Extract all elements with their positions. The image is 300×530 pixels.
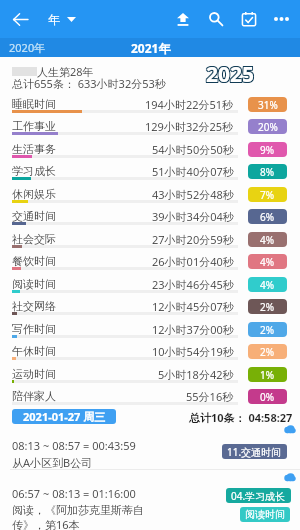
staticText: 2% xyxy=(260,323,275,337)
staticText: 54小时50分50秒 xyxy=(152,142,234,157)
staticText: 194小时22分51秒 xyxy=(145,97,234,112)
staticText: 阅读时间 xyxy=(245,508,285,521)
staticText: 2021-01-27 周三 xyxy=(23,409,106,424)
staticText: 04.学习成长 xyxy=(231,489,286,503)
staticText: 06:57 ~ 08:13 = 01:16:00 xyxy=(12,486,136,501)
button[interactable]: 工作事业 xyxy=(0,115,300,137)
button[interactable]: Sync to cloud xyxy=(284,473,295,482)
staticText: 51小时40分07秒 xyxy=(152,164,234,179)
button[interactable]: 社会交际 xyxy=(0,228,300,250)
staticText: 9% xyxy=(260,143,275,157)
button[interactable]: 阅读时间 xyxy=(0,273,300,295)
staticText: 129小时32分25秒 xyxy=(145,119,234,134)
button[interactable]: More options xyxy=(265,0,297,38)
staticText: 12小时37分00秒 xyxy=(152,322,234,337)
staticText: 2025 xyxy=(207,59,256,83)
button[interactable]: 休闲娱乐 xyxy=(0,183,300,205)
staticText: 总计655条： 633小时32分53秒 xyxy=(12,76,166,91)
staticText: 阅读时间 xyxy=(12,277,56,291)
staticText: 餐饮时间 xyxy=(12,254,56,268)
staticText: 2021年 xyxy=(131,40,171,56)
staticText: 生活事务 xyxy=(12,142,56,156)
button[interactable]: 7% xyxy=(248,187,287,202)
staticText: 0% xyxy=(260,390,275,404)
button[interactable]: 运动时间 xyxy=(0,363,300,385)
staticText: 10小时54分19秒 xyxy=(152,344,234,359)
staticText: 7% xyxy=(260,188,275,202)
button[interactable]: 2% xyxy=(248,344,287,359)
button[interactable]: 31% xyxy=(248,97,287,112)
button[interactable]: 1% xyxy=(248,367,287,382)
button[interactable]: 学习成长 xyxy=(0,160,300,182)
button[interactable]: 9% xyxy=(248,142,287,157)
staticText: 写作时间 xyxy=(12,322,56,336)
staticText: 社交网络 xyxy=(12,299,56,313)
button[interactable]: 生活事务 xyxy=(0,138,300,160)
button[interactable]: 阅读时间 xyxy=(240,507,290,522)
staticText: 2025 xyxy=(207,60,256,84)
button[interactable]: 4% xyxy=(248,277,287,292)
staticText: 27小时20分59秒 xyxy=(152,232,234,247)
staticText: 31% xyxy=(258,98,278,112)
staticText: 睡眠时间 xyxy=(12,97,56,111)
staticText: 人生第28年 xyxy=(37,64,94,79)
staticText: 2% xyxy=(260,300,275,314)
staticText: 社会交际 xyxy=(12,232,56,246)
staticText: 2025 xyxy=(206,59,255,83)
button[interactable]: Upload xyxy=(167,0,199,38)
staticText: 6% xyxy=(260,210,275,224)
staticText: 休闲娱乐 xyxy=(12,187,56,201)
staticText: 43小时52分48秒 xyxy=(152,187,234,202)
button[interactable]: Sync to cloud xyxy=(284,425,295,434)
staticText: 2025 xyxy=(205,61,254,85)
button[interactable]: 11.交通时间 xyxy=(222,444,287,459)
button[interactable]: 交通时间 xyxy=(0,205,300,227)
button[interactable]: 年 xyxy=(40,0,84,38)
staticText: 08:13 ~ 08:57 = 00:43:59 xyxy=(12,438,136,453)
staticText: 年 xyxy=(48,12,60,27)
staticText: 8% xyxy=(260,165,275,179)
button[interactable]: 04.学习成长 xyxy=(226,488,291,503)
staticText: 20% xyxy=(258,120,278,134)
button[interactable]: 2020年 xyxy=(0,38,89,57)
staticText: 交通时间 xyxy=(12,209,56,223)
staticText: 39小时34分04秒 xyxy=(152,209,234,224)
staticText: 2025 xyxy=(206,61,255,85)
staticText: 26小时01分40秒 xyxy=(152,254,234,269)
button[interactable]: 4% xyxy=(248,254,287,269)
staticText: 1% xyxy=(260,368,275,382)
button[interactable]: 4% xyxy=(248,232,287,247)
button[interactable]: 2% xyxy=(248,299,287,314)
staticText: 4% xyxy=(260,255,275,269)
button[interactable]: Calendar xyxy=(232,0,265,38)
button[interactable]: 20% xyxy=(248,119,287,134)
staticText: 11.交通时间 xyxy=(227,445,282,459)
button[interactable]: 午休时间 xyxy=(0,340,300,362)
button[interactable]: 0% xyxy=(248,389,287,404)
button[interactable]: 2021年 xyxy=(89,38,212,57)
staticText: 23小时46分45秒 xyxy=(152,277,234,292)
staticText: 陪伴家人 xyxy=(12,389,56,403)
button[interactable]: 6% xyxy=(248,209,287,224)
button[interactable]: 写作时间 xyxy=(0,318,300,340)
button[interactable]: Search xyxy=(199,0,232,38)
staticText: 55分16秒 xyxy=(186,389,234,404)
button[interactable]: 餐饮时间 xyxy=(0,250,300,272)
staticText: 12小时45分07秒 xyxy=(152,299,234,314)
staticText: 2025 xyxy=(205,59,254,83)
staticText: 工作事业 xyxy=(12,119,56,133)
staticText: 4% xyxy=(260,233,275,247)
button[interactable]: 8% xyxy=(248,164,287,179)
staticText: 2025 xyxy=(205,60,254,84)
button[interactable]: 2% xyxy=(248,322,287,337)
staticText: 4% xyxy=(260,278,275,292)
button[interactable]: Back xyxy=(0,0,40,38)
staticText: 运动时间 xyxy=(12,367,56,381)
staticText: 午休时间 xyxy=(12,344,56,358)
button[interactable]: 社交网络 xyxy=(0,295,300,317)
button[interactable]: 陪伴家人 xyxy=(0,385,300,407)
button[interactable]: 睡眠时间 xyxy=(0,93,300,115)
button[interactable]: 2021-01-27 周三 xyxy=(12,409,116,424)
staticText: 学习成长 xyxy=(12,164,56,178)
staticText: 2020年 xyxy=(9,40,46,55)
